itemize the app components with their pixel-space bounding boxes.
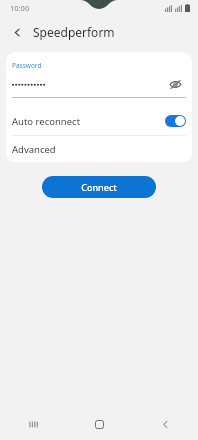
button[interactable]: Connect — [42, 176, 156, 198]
staticText: Connect — [81, 181, 117, 193]
button[interactable]: Advanced — [6, 136, 192, 162]
button[interactable]: Password — [6, 52, 192, 107]
button[interactable]: Back — [6, 21, 28, 43]
staticText: Password — [12, 61, 42, 70]
staticText: 10:00 — [10, 3, 30, 13]
staticText: Auto reconnect — [12, 115, 165, 128]
button[interactable]: Auto reconnect — [6, 107, 192, 135]
staticText: Advanced — [12, 143, 56, 156]
button[interactable]: Recents — [0, 408, 66, 440]
staticText: Speedperform — [33, 24, 115, 40]
button[interactable]: Show password — [164, 73, 186, 95]
button[interactable]: Home — [66, 408, 132, 440]
button[interactable]: Back — [132, 408, 198, 440]
